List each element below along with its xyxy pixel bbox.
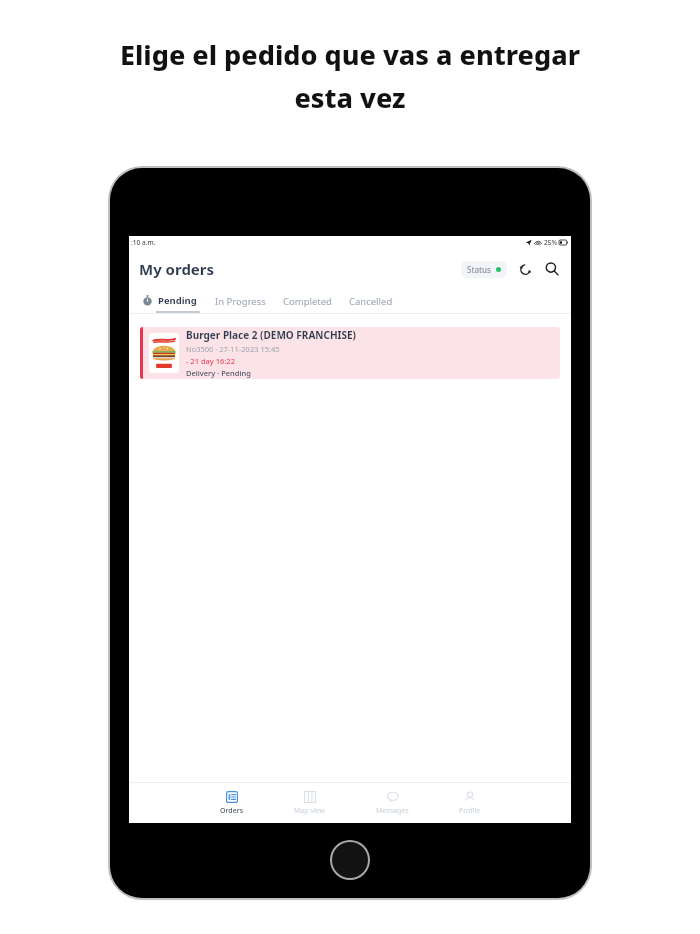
button[interactable]: Status	[461, 261, 507, 278]
button[interactable]: Pending	[139, 290, 200, 313]
staticText: Profile	[459, 806, 481, 816]
button[interactable]: Burger Place 2 (DEMO FRANCHISE)	[140, 327, 560, 379]
button[interactable]: Messages	[370, 788, 415, 819]
staticText: Delivery · Pending	[186, 368, 251, 378]
staticText: My orders	[139, 259, 215, 279]
button[interactable]: Orders	[214, 788, 250, 819]
button[interactable]: Cancelled	[347, 291, 395, 312]
staticText: :10 a.m.	[131, 238, 156, 247]
button[interactable]: Completed	[281, 291, 334, 312]
button[interactable]: Search	[543, 260, 561, 278]
staticText: Map view	[294, 806, 326, 816]
staticText: Elige el pedido que vas a entregar	[120, 36, 580, 73]
staticText: Status	[467, 264, 492, 275]
staticText: Completed	[283, 295, 332, 308]
staticText: No3500 · 27-11-2023 15:45	[186, 344, 280, 354]
staticText: Cancelled	[349, 295, 393, 308]
staticText: Messages	[376, 806, 409, 816]
staticText: Orders	[220, 806, 244, 816]
button[interactable]: In Progress	[213, 291, 268, 312]
staticText: - 21 day 16:22	[186, 356, 235, 366]
button[interactable]: Map view	[288, 788, 332, 819]
staticText: esta vez	[294, 79, 406, 116]
button[interactable]: Home	[332, 842, 368, 878]
button[interactable]: Profile	[453, 788, 487, 819]
staticText: In Progress	[215, 295, 266, 308]
staticText: Pending	[158, 294, 197, 307]
button[interactable]: Refresh	[516, 260, 534, 278]
staticText: 25%	[544, 238, 557, 247]
staticText: Burger Place 2 (DEMO FRANCHISE)	[186, 328, 356, 342]
